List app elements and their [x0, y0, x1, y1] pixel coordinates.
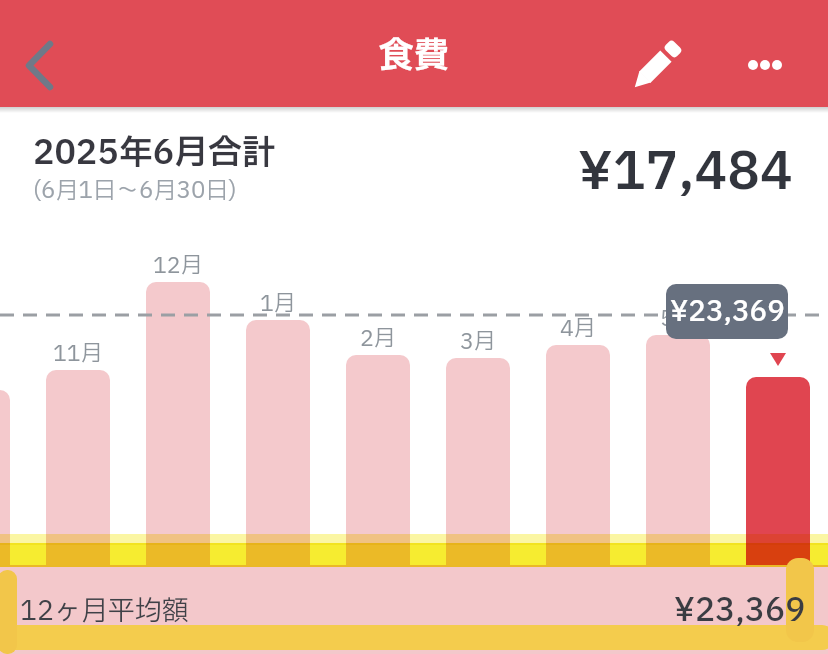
button[interactable]	[626, 36, 686, 96]
staticText: 1月	[260, 288, 296, 321]
staticText: 3月	[460, 326, 496, 359]
staticText: 2025年6月合計	[33, 128, 277, 179]
staticText: 4月	[560, 313, 596, 346]
staticText: 5月	[660, 303, 696, 336]
staticText: 12月	[153, 250, 203, 283]
staticText: 11月	[53, 338, 103, 371]
button[interactable]	[12, 32, 68, 98]
button[interactable]: 12ヶ月平均額	[0, 565, 828, 654]
staticText: ¥17,484	[578, 134, 793, 212]
staticText: 食費	[379, 30, 450, 82]
staticText: (6月1日〜6月30日)	[33, 174, 237, 208]
button[interactable]	[738, 40, 792, 90]
staticText: ¥23,369	[674, 587, 806, 635]
staticText: ¥23,369	[670, 291, 785, 333]
staticText: 2月	[360, 323, 396, 356]
staticText: 12ヶ月平均額	[20, 591, 190, 631]
